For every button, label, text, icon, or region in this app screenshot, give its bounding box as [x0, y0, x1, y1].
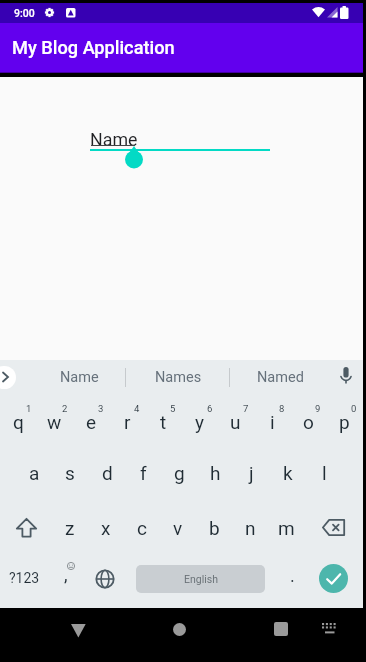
button[interactable]	[145, 396, 181, 446]
staticText: a	[29, 462, 40, 484]
staticText: My Blog Application	[12, 37, 175, 58]
staticText: Names	[155, 369, 202, 386]
button[interactable]	[95, 569, 115, 589]
button[interactable]: .	[282, 560, 302, 590]
button[interactable]	[326, 396, 362, 446]
staticText: b	[209, 517, 220, 539]
staticText: 2	[62, 403, 68, 414]
staticText: l	[322, 462, 327, 484]
button[interactable]	[270, 448, 306, 498]
button[interactable]	[338, 366, 354, 388]
button[interactable]	[217, 396, 253, 446]
staticText: v	[173, 517, 183, 539]
button[interactable]	[196, 502, 232, 552]
button[interactable]	[125, 448, 161, 498]
staticText: x	[101, 517, 111, 539]
staticText: n	[245, 517, 256, 539]
button[interactable]	[88, 502, 124, 552]
staticText: q	[13, 411, 24, 433]
button[interactable]: Names	[138, 364, 218, 390]
staticText: w	[47, 411, 62, 433]
button[interactable]	[36, 396, 72, 446]
staticText: g	[174, 462, 185, 484]
button[interactable]	[290, 396, 326, 446]
button[interactable]: English	[136, 565, 265, 593]
staticText: 9	[315, 403, 321, 414]
staticText: t	[160, 411, 167, 433]
staticText: .	[290, 565, 295, 586]
staticText: y	[195, 411, 204, 433]
button[interactable]	[124, 502, 160, 552]
button[interactable]	[109, 396, 145, 446]
staticText: m	[278, 517, 295, 539]
button[interactable]	[232, 502, 268, 552]
button[interactable]: ,	[56, 559, 76, 589]
button[interactable]	[260, 610, 302, 652]
staticText: English	[184, 573, 218, 585]
staticText: j	[249, 462, 254, 484]
button[interactable]	[268, 502, 304, 552]
button[interactable]	[89, 448, 125, 498]
button[interactable]: ?123	[1, 563, 47, 593]
button[interactable]	[88, 120, 272, 168]
button[interactable]: Named	[240, 364, 320, 390]
staticText: Named	[257, 369, 304, 386]
button[interactable]	[160, 502, 196, 552]
staticText: 8	[279, 403, 285, 414]
button[interactable]: Name	[39, 364, 119, 390]
button[interactable]	[16, 448, 52, 498]
staticText: e	[86, 411, 97, 433]
button[interactable]	[72, 396, 108, 446]
staticText: s	[65, 462, 75, 484]
staticText: 1	[26, 403, 32, 414]
staticText: 4	[134, 403, 140, 414]
button[interactable]	[316, 612, 344, 648]
staticText: h	[210, 462, 221, 484]
staticText: d	[102, 462, 113, 484]
staticText: i	[270, 411, 275, 433]
staticText: 6	[207, 403, 213, 414]
staticText: 3	[98, 403, 104, 414]
staticText: 9:00	[14, 7, 35, 19]
staticText: Name	[60, 369, 99, 386]
button[interactable]	[16, 518, 37, 538]
button[interactable]	[233, 448, 269, 498]
staticText: Name	[90, 129, 138, 150]
button[interactable]	[322, 519, 346, 536]
button[interactable]	[52, 502, 88, 552]
staticText: c	[137, 517, 147, 539]
staticText: ,	[64, 564, 68, 585]
button[interactable]	[253, 396, 289, 446]
staticText: p	[339, 411, 350, 433]
button[interactable]	[319, 564, 348, 593]
staticText: o	[303, 411, 314, 433]
staticText: r	[124, 411, 131, 433]
button[interactable]	[0, 366, 16, 389]
staticText: 7	[243, 403, 249, 414]
staticText: ?123	[9, 570, 40, 586]
button[interactable]	[0, 396, 36, 446]
staticText: z	[65, 517, 75, 539]
staticText: 5	[170, 403, 176, 414]
button[interactable]	[306, 448, 342, 498]
button[interactable]	[181, 396, 217, 446]
button[interactable]	[58, 610, 100, 652]
button[interactable]	[197, 448, 233, 498]
button[interactable]	[52, 448, 88, 498]
staticText: 0	[351, 403, 357, 414]
staticText: f	[140, 462, 147, 484]
staticText: u	[230, 411, 241, 433]
staticText: k	[283, 462, 293, 484]
button[interactable]	[161, 448, 197, 498]
button[interactable]	[158, 610, 200, 652]
